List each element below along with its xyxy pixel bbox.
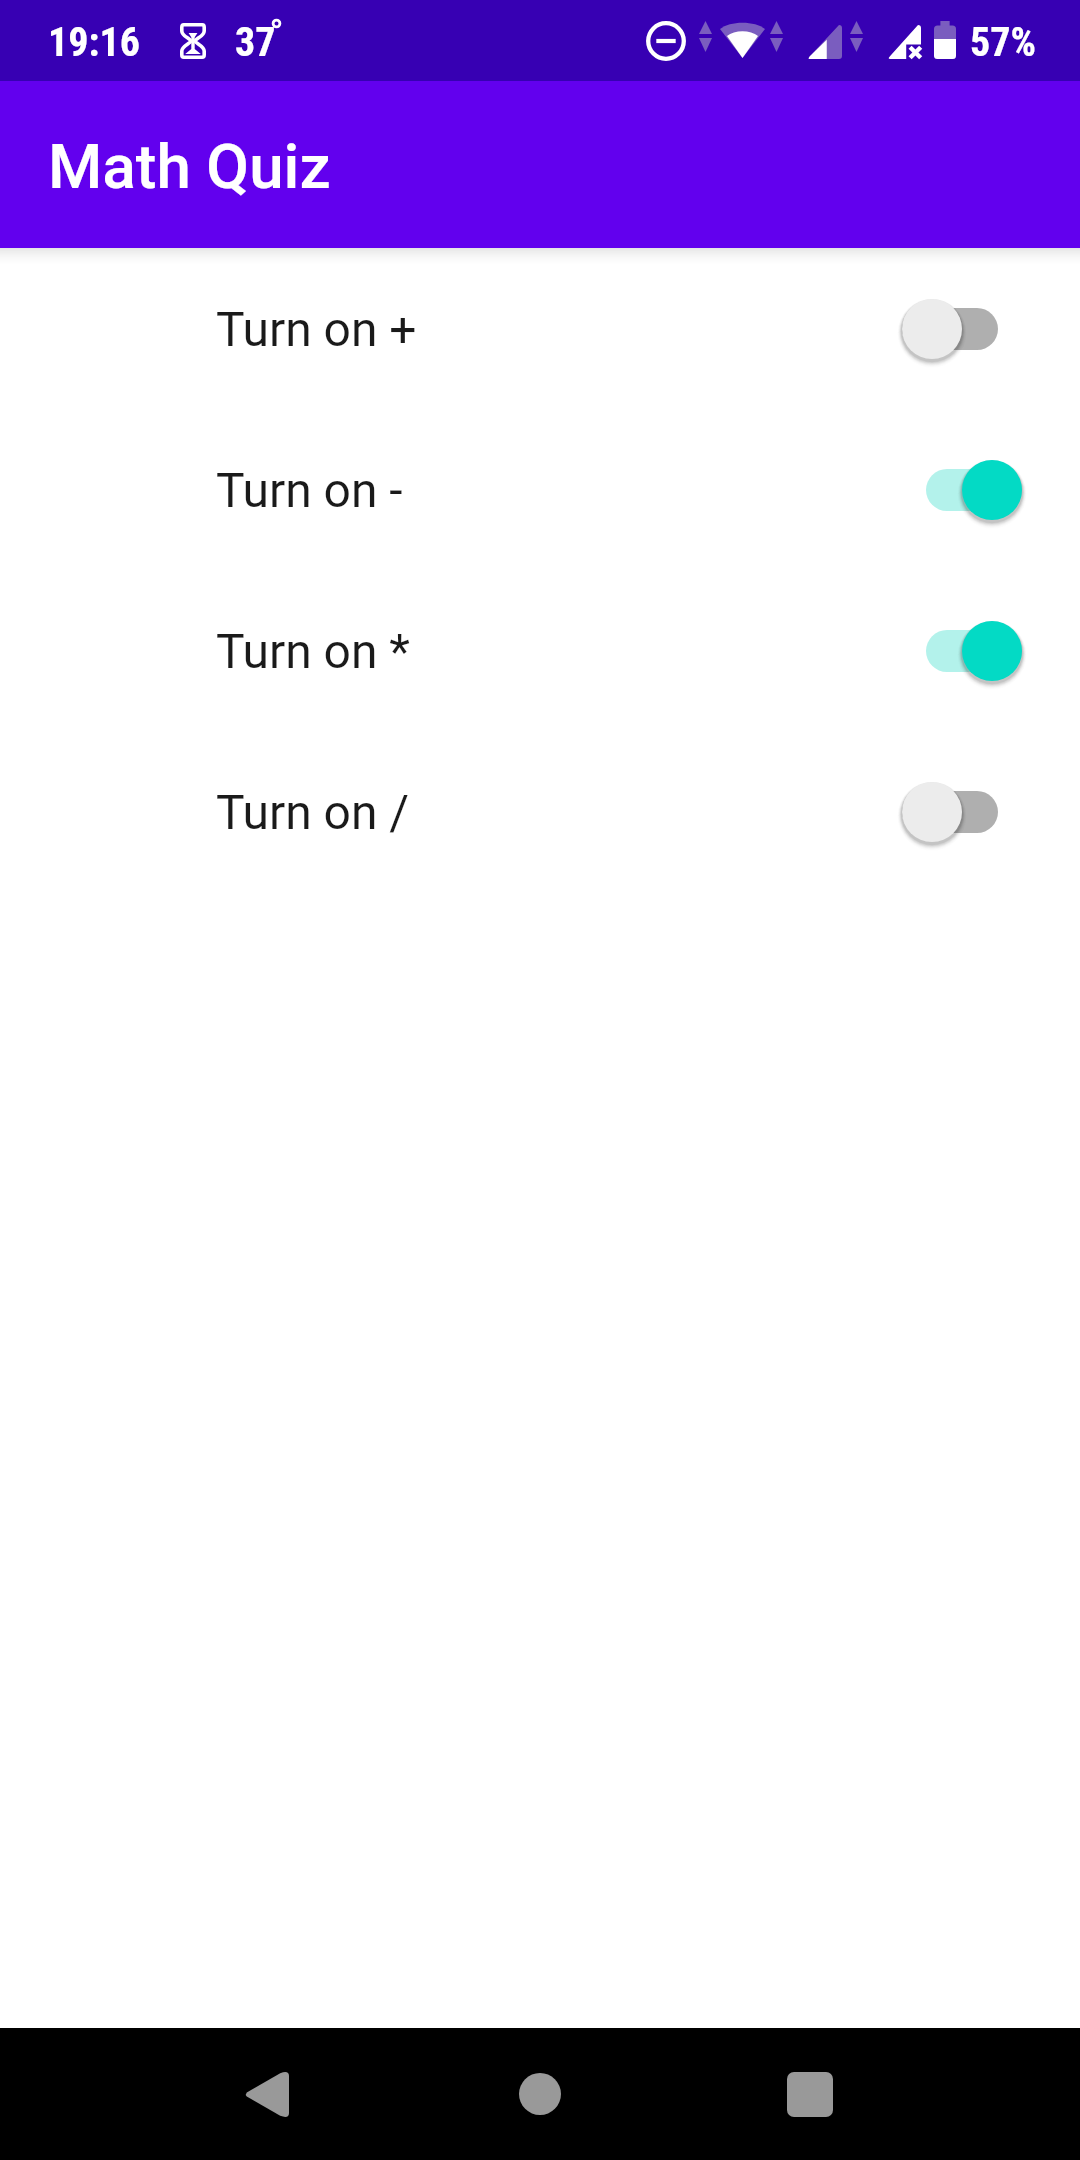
other: Switch on [902,615,1022,687]
staticText: 57% [970,19,1037,66]
other: Switch off [902,776,1022,848]
staticText: Turn on + [216,301,417,357]
staticText: Turn on * [216,623,411,679]
button[interactable]: Turn on - [0,409,1080,570]
button[interactable]: Turn on / [0,731,1080,892]
staticText: 37 [235,19,276,66]
button[interactable]: Turn on * [0,570,1080,731]
button[interactable]: Home [480,2034,600,2154]
staticText: Turn on - [216,462,403,518]
other: Switch off [902,293,1022,365]
button[interactable]: Recent apps [750,2034,870,2154]
staticText: Math Quiz [48,130,331,203]
other: Switch on [902,454,1022,526]
staticText: 19:16 [48,19,140,66]
button[interactable]: Turn on + [0,248,1080,409]
staticText: Turn on / [216,784,410,840]
button[interactable]: Back [207,2034,327,2154]
